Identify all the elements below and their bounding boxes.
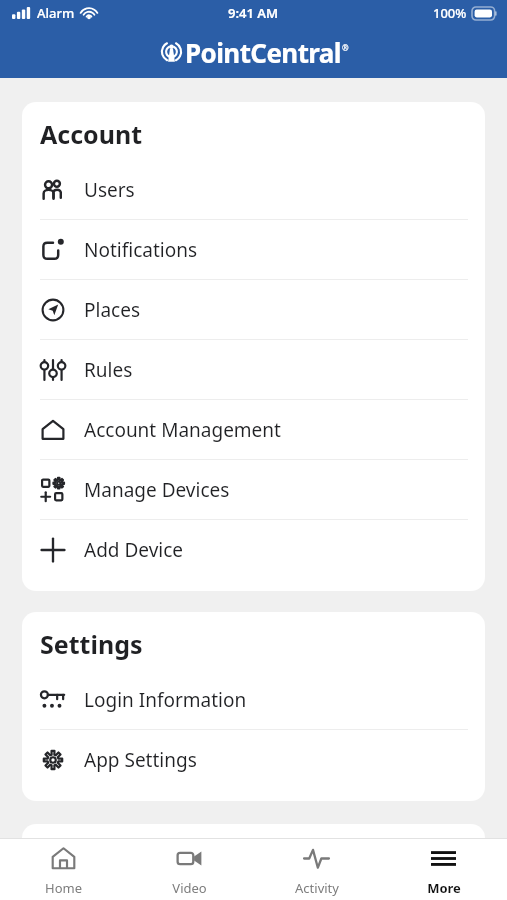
staticText: Rules — [84, 357, 133, 383]
button[interactable]: Manage Devices — [22, 460, 485, 519]
button[interactable]: Places — [22, 280, 485, 339]
staticText: Notifications — [84, 237, 198, 263]
staticText: About — [40, 839, 116, 873]
button[interactable]: Account Management — [22, 400, 485, 459]
staticText: Add Device — [84, 537, 184, 563]
staticText: Home — [45, 879, 82, 897]
button[interactable]: App Settings — [22, 730, 485, 789]
staticText: PointCentral — [185, 35, 341, 70]
staticText: Activity — [295, 879, 339, 897]
staticText: ® — [342, 42, 349, 53]
staticText: Login Information — [84, 687, 247, 713]
staticText: 9:41 AM — [228, 4, 279, 22]
staticText: Video — [172, 879, 207, 897]
staticText: Alarm — [37, 4, 75, 22]
staticText: Account — [40, 117, 143, 151]
button[interactable]: Home — [0, 838, 126, 900]
staticText: Places — [84, 297, 140, 323]
button[interactable]: Notifications — [22, 220, 485, 279]
staticText: Account Management — [84, 417, 281, 443]
button[interactable]: Activity — [253, 838, 380, 900]
staticText: Manage Devices — [84, 477, 230, 503]
staticText: App Settings — [84, 747, 197, 773]
button[interactable]: Add Device — [22, 520, 485, 579]
staticText: More — [427, 879, 461, 897]
staticText: 100% — [433, 4, 467, 22]
button[interactable]: Users — [22, 160, 485, 219]
staticText: Users — [84, 177, 135, 203]
button[interactable]: Rules — [22, 340, 485, 399]
button[interactable]: More — [380, 838, 507, 900]
staticText: Settings — [40, 627, 143, 661]
button[interactable]: Login Information — [22, 670, 485, 729]
button[interactable]: Video — [126, 838, 253, 900]
